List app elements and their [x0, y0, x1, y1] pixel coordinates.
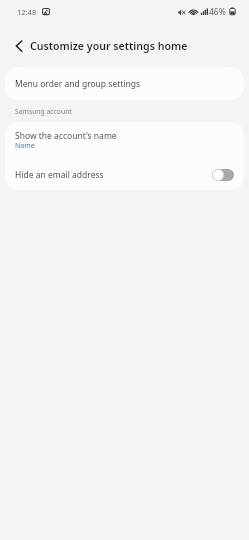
staticText: Name — [15, 141, 35, 151]
staticText: Samsung account — [15, 107, 72, 116]
staticText: Show the account's name — [15, 130, 117, 142]
staticText: 12:48 — [17, 7, 37, 17]
staticText: Menu order and group settings — [15, 78, 141, 90]
button[interactable]: Hide an email address — [5, 159, 244, 190]
button[interactable]: Show the account's name — [5, 122, 244, 159]
button[interactable]: Hide an email address toggle — [212, 169, 234, 181]
staticText: Customize your settings home — [30, 39, 188, 53]
staticText: 46% — [209, 6, 226, 18]
button[interactable]: Menu order and group settings — [5, 67, 244, 100]
staticText: Hide an email address — [15, 169, 104, 181]
button[interactable]: Back — [5, 28, 33, 56]
